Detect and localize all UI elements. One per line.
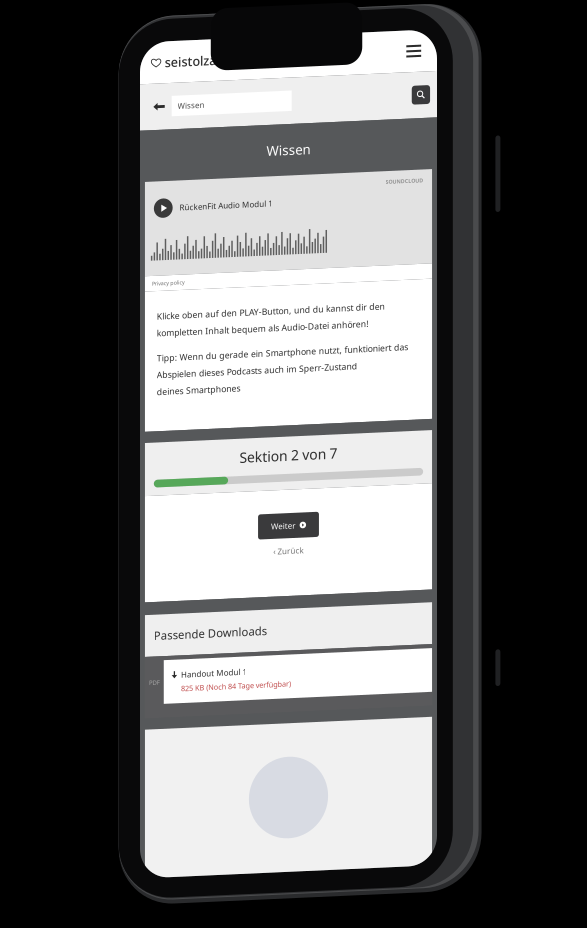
staticText: Abspielen dieses Podcasts auch im Sperr-…	[34, 642, 439, 665]
staticText: Sektion 2 von 7	[201, 804, 399, 841]
staticText: deines Smartphones	[34, 675, 203, 698]
staticText: Tipp: Wenn du gerade ein Smartphone nutz…	[34, 609, 542, 632]
staticText: Klicke oben auf den PLAY-Button, und du …	[34, 527, 495, 550]
staticText: RückenFit Audio Modul 1	[80, 316, 268, 338]
staticText: kompletten Inhalt bequem als Audio-Datei…	[34, 560, 462, 583]
staticText: Wissen	[255, 206, 344, 241]
staticText: seistolzauf	[50, 24, 179, 58]
staticText: Wissen	[76, 117, 130, 138]
